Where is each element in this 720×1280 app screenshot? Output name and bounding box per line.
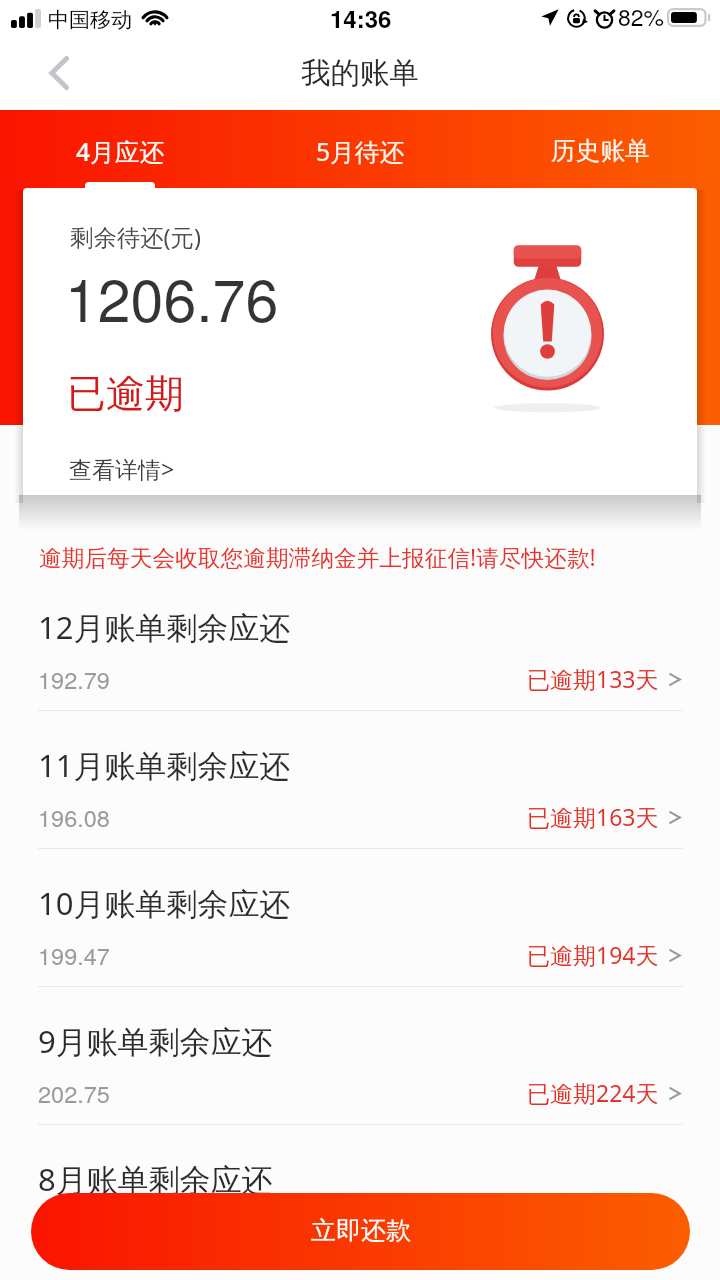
button[interactable]: 立即还款 — [31, 1193, 690, 1270]
staticText: 剩余待还(元) — [70, 221, 201, 253]
staticText: 已逾期194天 — [527, 939, 659, 970]
button[interactable]: 10月账单剩余应还 — [0, 869, 720, 1007]
staticText: 8月账单剩余应还 — [38, 1158, 273, 1200]
staticText: 已逾期 — [67, 369, 184, 418]
staticText: 202.75 — [38, 1076, 110, 1110]
staticText: 192.79 — [38, 662, 110, 696]
staticText: 199.47 — [38, 938, 110, 972]
button[interactable]: 8月账单剩余应还 — [0, 1145, 720, 1280]
staticText: 我的账单 — [301, 55, 419, 92]
button[interactable]: 查看详情> — [53, 436, 195, 488]
staticText: 11月账单剩余应还 — [38, 744, 291, 786]
staticText: 已逾期255天 — [527, 1215, 659, 1246]
staticText: 82% — [618, 0, 665, 33]
button[interactable]: 9月账单剩余应还 — [0, 1007, 720, 1145]
staticText: 12月账单剩余应还 — [38, 606, 291, 648]
staticText: 5月待还 — [316, 135, 405, 169]
staticText: 4月应还 — [76, 135, 165, 169]
staticText: 已逾期133天 — [527, 663, 659, 694]
staticText: 已逾期224天 — [527, 1077, 659, 1108]
button[interactable]: 12月账单剩余应还 — [0, 593, 720, 731]
staticText: 中国移动 — [48, 7, 132, 33]
staticText: 10月账单剩余应还 — [38, 882, 291, 924]
staticText: 已逾期163天 — [527, 801, 659, 832]
staticText: 查看详情> — [69, 453, 175, 484]
staticText: 196.08 — [38, 800, 110, 834]
button[interactable]: 5月待还 — [240, 110, 480, 189]
staticText: 9月账单剩余应还 — [38, 1020, 273, 1062]
staticText: 1206.76 — [65, 254, 279, 338]
staticText: 立即还款 — [311, 1215, 411, 1246]
staticText: 逾期后每天会收取您逾期滞纳金并上报征信!请尽快还款! — [39, 542, 596, 573]
staticText: 14:36 — [330, 1, 392, 35]
button[interactable]: Back — [0, 44, 96, 110]
button[interactable]: 历史账单 — [480, 110, 720, 189]
staticText: 历史账单 — [551, 135, 650, 166]
button[interactable]: 11月账单剩余应还 — [0, 731, 720, 869]
button[interactable]: 4月应还 — [0, 110, 240, 189]
